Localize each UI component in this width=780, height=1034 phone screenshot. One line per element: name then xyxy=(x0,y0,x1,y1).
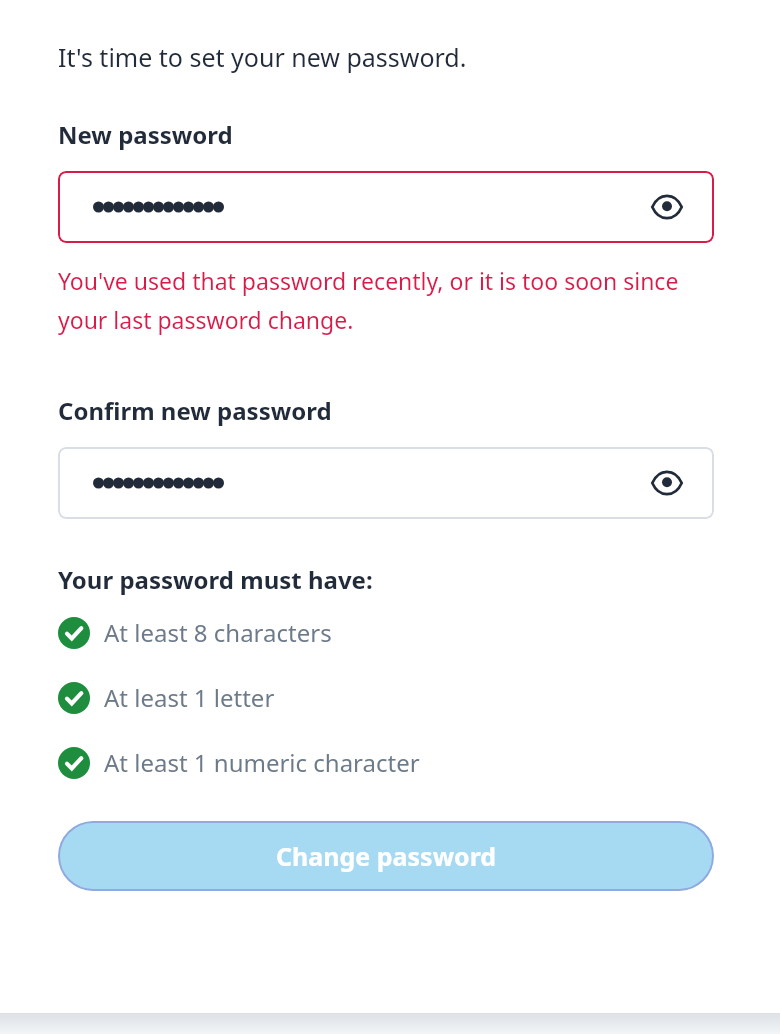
staticText: Confirm new password xyxy=(58,394,332,427)
button[interactable]: Change password xyxy=(58,821,714,891)
staticText: Your password must have: xyxy=(58,563,373,596)
button[interactable]: At least 8 characters xyxy=(58,616,714,649)
button[interactable]: Show password xyxy=(646,186,688,228)
staticText: At least 1 letter xyxy=(104,681,275,714)
staticText: Change password xyxy=(276,839,497,873)
button[interactable]: At least 1 letter xyxy=(58,681,714,714)
staticText: New password xyxy=(58,118,233,151)
staticText: At least 8 characters xyxy=(104,616,332,649)
staticText: At least 1 numeric character xyxy=(104,746,420,779)
staticText: You've used that password recently, or i… xyxy=(58,265,714,336)
button[interactable]: At least 1 numeric character xyxy=(58,746,714,779)
staticText: It's time to set your new password. xyxy=(58,40,467,74)
button[interactable]: Show password xyxy=(58,447,714,519)
button[interactable]: Show password xyxy=(646,462,688,504)
button[interactable]: Show password xyxy=(58,171,714,243)
